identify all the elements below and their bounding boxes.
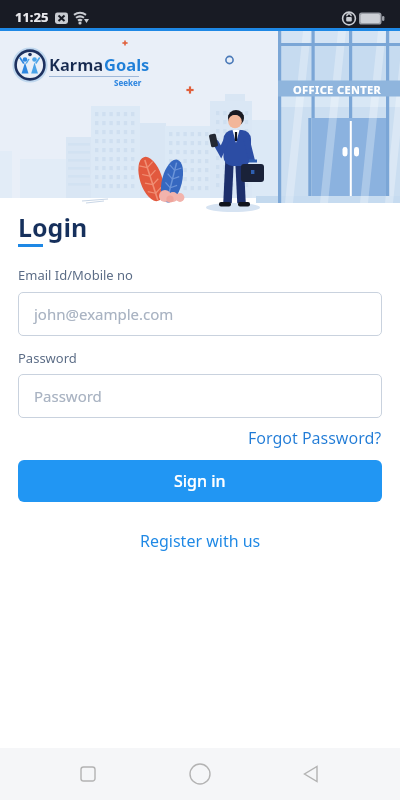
button[interactable]: Sign in: [18, 460, 382, 502]
button[interactable]: john@example.com: [18, 292, 382, 336]
button[interactable]: Register with us: [140, 530, 261, 552]
staticText: Sign in: [174, 470, 226, 492]
staticText: Password: [18, 349, 77, 367]
staticText: OFFICE CENTER: [293, 82, 382, 97]
staticText: Forgot Password?: [248, 427, 382, 449]
staticText: 11:25: [15, 8, 49, 26]
button[interactable]: [288, 750, 336, 798]
button[interactable]: Forgot Password?: [248, 427, 382, 449]
button[interactable]: [64, 750, 112, 798]
staticText: Password: [34, 386, 102, 406]
button[interactable]: [176, 750, 224, 798]
staticText: Login: [18, 210, 88, 244]
staticText: Email Id/Mobile no: [18, 266, 133, 284]
staticText: Goals: [104, 53, 150, 75]
staticText: john@example.com: [34, 304, 174, 324]
staticText: Seeker: [114, 77, 142, 88]
staticText: Karma: [49, 53, 104, 75]
staticText: Register with us: [140, 530, 261, 552]
button[interactable]: Password: [18, 374, 382, 418]
